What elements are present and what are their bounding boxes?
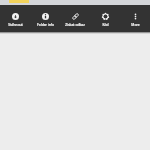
- button[interactable]: Kód: [90, 5, 120, 26]
- staticText: Kód: [102, 22, 109, 26]
- button[interactable]: Folder info: [30, 5, 60, 26]
- staticText: Stáhnout: [8, 22, 23, 26]
- other: More options: [132, 13, 139, 20]
- staticText: More: [131, 22, 140, 26]
- button[interactable]: Získat odkaz: [60, 5, 90, 26]
- button[interactable]: Stáhnout: [0, 5, 30, 26]
- button[interactable]: More options: [120, 5, 150, 26]
- staticText: Folder info: [37, 22, 54, 26]
- staticText: Získat odkaz: [65, 22, 85, 26]
